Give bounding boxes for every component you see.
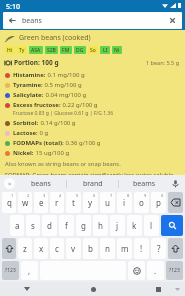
button[interactable]: Shift — [2, 238, 16, 259]
staticText: brand — [83, 179, 103, 189]
button[interactable]: beans — [15, 175, 66, 192]
staticText: FODMAPs (total): — [13, 139, 64, 147]
button[interactable]: z — [18, 238, 32, 259]
button[interactable]: Nickel: — [0, 147, 185, 157]
staticText: v — [71, 243, 76, 254]
staticText: DG — [76, 47, 84, 54]
button[interactable]: brand — [67, 175, 118, 192]
button[interactable]: e — [34, 192, 48, 213]
button[interactable]: b — [83, 238, 98, 259]
button[interactable]: FM — [62, 46, 70, 54]
button[interactable]: Backspace — [168, 192, 183, 213]
button[interactable]: s — [26, 215, 40, 236]
button[interactable]: Excess fructose: — [0, 99, 185, 117]
button[interactable]: LI — [102, 46, 108, 54]
button[interactable]: Clear — [168, 16, 177, 25]
button[interactable]: i — [117, 192, 132, 213]
button[interactable]: Green beans (cooked) — [5, 33, 180, 43]
button[interactable]: m — [117, 238, 132, 259]
button[interactable]: r — [50, 192, 64, 213]
button[interactable]: ?123 — [166, 261, 183, 280]
staticText: Lactose: — [13, 129, 38, 137]
button[interactable]: ! — [134, 238, 149, 259]
button[interactable]: l — [144, 215, 159, 236]
button[interactable]: Ty — [19, 46, 25, 54]
button[interactable]: S2B — [47, 46, 56, 54]
button[interactable]: u — [100, 192, 115, 213]
button[interactable]: Portion: 100 g — [4, 58, 180, 67]
button[interactable]: n — [100, 238, 115, 259]
staticText: ! — [140, 243, 143, 254]
button[interactable]: Tyramine: — [0, 79, 185, 89]
button[interactable]: Back — [8, 12, 177, 29]
button[interactable]: ? — [151, 238, 166, 259]
button[interactable]: q — [2, 192, 16, 213]
button[interactable]: ?123 — [2, 261, 19, 280]
button[interactable]: c — [50, 238, 64, 259]
button[interactable]: Sorbitol: — [0, 117, 185, 127]
button[interactable]: p — [151, 192, 166, 213]
button[interactable]: . — [147, 261, 164, 280]
staticText: Histamine: — [13, 71, 46, 79]
button[interactable]: Back — [22, 284, 32, 294]
button[interactable]: Recents — [153, 284, 163, 294]
button[interactable]: Search — [161, 215, 183, 236]
button[interactable]: Salicylate: — [0, 89, 185, 99]
staticText: 0.5 mg/100 g — [43, 81, 82, 89]
button[interactable]: h — [93, 215, 108, 236]
staticText: g — [81, 220, 86, 231]
button[interactable]: t — [66, 192, 81, 213]
staticText: 0 — [161, 193, 164, 198]
button[interactable]: a — [10, 215, 24, 236]
button[interactable]: DG — [76, 46, 84, 54]
button[interactable]: beams — [119, 175, 170, 192]
staticText: 4 — [59, 193, 62, 198]
staticText: b — [88, 243, 93, 254]
staticText: 7 — [110, 193, 113, 198]
staticText: 0.1 mg/100 g — [46, 71, 85, 79]
staticText: w — [22, 197, 29, 208]
button[interactable]: Hide keyboard — [173, 285, 181, 293]
button[interactable]: Histamine: — [0, 69, 185, 79]
staticText: s — [31, 220, 35, 231]
button[interactable]: o — [134, 192, 149, 213]
button[interactable]: Hi — [7, 46, 13, 54]
button[interactable]: x — [34, 238, 48, 259]
button[interactable]: y — [83, 192, 98, 213]
staticText: x — [39, 243, 44, 254]
button[interactable]: w — [18, 192, 32, 213]
staticText: 15 ug/100 g — [34, 149, 70, 157]
button[interactable]: So — [90, 46, 96, 54]
button[interactable]: d — [42, 215, 57, 236]
button[interactable]: , — [21, 261, 38, 280]
button[interactable]: g — [76, 215, 91, 236]
button[interactable]: v — [66, 238, 81, 259]
staticText: a — [15, 220, 20, 231]
staticText: 0.22 g/100 g — [61, 101, 98, 109]
button[interactable]: Shift — [168, 238, 183, 259]
button[interactable]: Back — [8, 16, 17, 25]
staticText: 3 — [43, 193, 46, 198]
button[interactable]: Emoji — [128, 261, 145, 280]
staticText: t — [72, 197, 75, 208]
button[interactable]: Lactose: — [0, 127, 185, 137]
button[interactable]: Voice input — [170, 178, 181, 189]
staticText: n — [105, 243, 110, 254]
staticText: Fructose 0.83 g | Glucose 0.61 g | F/G 1… — [13, 110, 114, 117]
staticText: LI — [103, 47, 108, 54]
button[interactable]: Ni — [114, 46, 120, 54]
button[interactable]: Expand — [4, 178, 15, 189]
button[interactable]: Home — [88, 284, 98, 294]
button[interactable]: ASA — [31, 46, 41, 54]
button[interactable]: FODMAPs (total): — [0, 137, 185, 147]
staticText: ?123 — [169, 267, 180, 274]
staticText: , — [28, 265, 31, 276]
button[interactable]: f — [59, 215, 74, 236]
button[interactable]: j — [110, 215, 125, 236]
staticText: So — [90, 47, 96, 54]
staticText: f — [65, 220, 68, 231]
staticText: d — [47, 220, 52, 231]
staticText: Also known as string beans or snap beans… — [5, 160, 121, 168]
button[interactable]: k — [127, 215, 142, 236]
